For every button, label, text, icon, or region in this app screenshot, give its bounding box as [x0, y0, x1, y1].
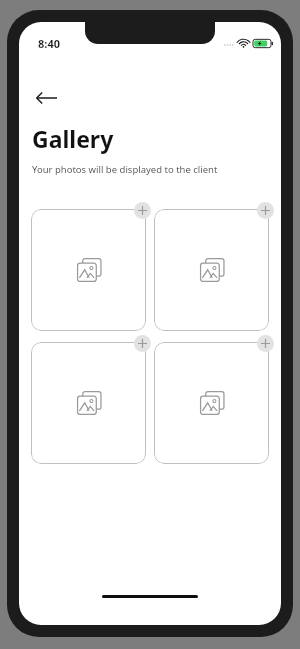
button[interactable]: Back: [25, 77, 67, 119]
staticText: 8:40: [38, 36, 60, 51]
staticText: Your photos will be displayed to the cli…: [32, 163, 218, 176]
button[interactable]: Add photo: [134, 202, 151, 219]
staticText: Gallery: [32, 123, 114, 154]
button[interactable]: Add photo: [257, 202, 274, 219]
button[interactable]: Add photo: [134, 335, 151, 352]
button[interactable]: Photo placeholder: [154, 209, 269, 331]
button[interactable]: Photo placeholder: [154, 342, 269, 464]
button[interactable]: Photo placeholder: [31, 342, 146, 464]
button[interactable]: Photo placeholder: [31, 209, 146, 331]
button[interactable]: Add photo: [257, 335, 274, 352]
